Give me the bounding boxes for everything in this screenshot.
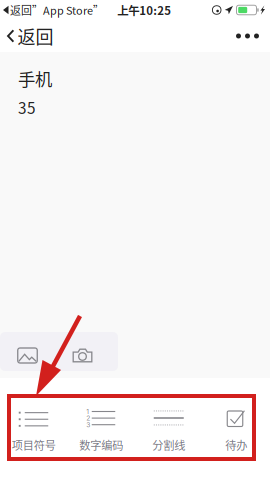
staticText: 上午10:25 [117, 2, 171, 18]
button[interactable]: 分割线 [135, 400, 202, 462]
staticText: 1 [86, 407, 89, 416]
button[interactable]: 拍照 [55, 328, 110, 375]
button[interactable]: 1 [67, 400, 135, 462]
staticText: 待办 [225, 437, 247, 453]
staticText: 数字编码 [79, 437, 123, 453]
button[interactable]: 项目符号 [0, 400, 67, 462]
button[interactable]: 插入图片 [0, 328, 55, 375]
staticText: 手机 [18, 66, 52, 91]
staticText: 分割线 [152, 437, 185, 453]
staticText: 3 [86, 421, 90, 429]
button[interactable]: 更多 [222, 21, 270, 50]
staticText: 返回 [17, 23, 53, 49]
staticText: 2 [86, 414, 90, 422]
staticText: 项目符号 [12, 437, 56, 453]
button[interactable]: 返回 [0, 15, 65, 57]
staticText: 返回”App Store” [10, 2, 104, 18]
staticText: 35 [18, 96, 36, 118]
button[interactable]: 待办 [202, 400, 270, 462]
